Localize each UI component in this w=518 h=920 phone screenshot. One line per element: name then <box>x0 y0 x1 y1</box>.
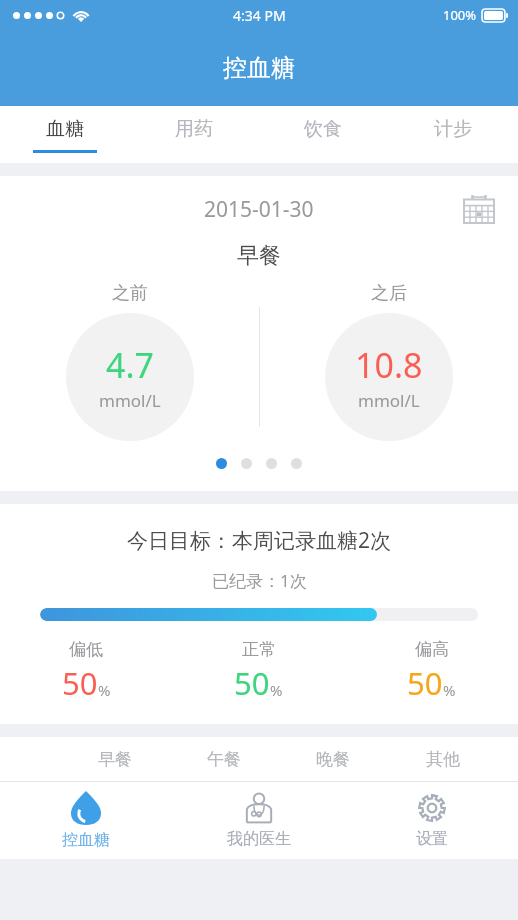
staticText: 午餐 <box>207 749 241 770</box>
staticText: 设置 <box>416 829 448 849</box>
staticText: 早餐 <box>98 749 132 770</box>
staticText: 用药 <box>175 117 213 141</box>
staticText: 我的医生 <box>227 829 291 849</box>
staticText: 控血糖 <box>62 830 110 850</box>
staticText: 血糖 <box>46 117 84 141</box>
button[interactable]: 午餐 <box>169 737 278 781</box>
staticText: 今日目标：本周记录血糖2次 <box>127 526 392 555</box>
staticText: 正常 <box>242 639 276 660</box>
button[interactable]: 其他 <box>388 737 498 781</box>
button[interactable]: Calendar <box>462 192 496 226</box>
button[interactable]: 血糖 <box>0 106 129 163</box>
staticText: mmol/L <box>99 389 161 412</box>
staticText: 已纪录：1次 <box>212 569 307 592</box>
staticText: 饮食 <box>304 117 342 141</box>
staticText: 4:34 PM <box>233 6 286 25</box>
staticText: 偏高 <box>415 639 449 660</box>
button[interactable]: 早餐 <box>60 737 169 781</box>
button[interactable]: 偏低 <box>0 639 172 704</box>
button[interactable]: 我的医生 <box>172 781 345 859</box>
staticText: 晚餐 <box>316 749 350 770</box>
button[interactable]: 晚餐 <box>278 737 388 781</box>
staticText: 计步 <box>434 117 472 141</box>
staticText: 偏低 <box>69 639 103 660</box>
staticText: 其他 <box>426 749 460 770</box>
button[interactable]: 之前 <box>0 282 259 452</box>
button[interactable]: 偏高 <box>345 639 518 704</box>
button[interactable]: 计步 <box>388 106 518 163</box>
staticText: 100% <box>443 6 477 24</box>
button[interactable]: 设置 <box>345 781 518 859</box>
staticText: 之后 <box>371 282 407 305</box>
staticText: % <box>270 680 283 700</box>
staticText: 控血糖 <box>223 53 295 83</box>
staticText: 4.7 <box>106 342 155 388</box>
button[interactable]: 之后 <box>259 282 518 452</box>
staticText: % <box>443 680 456 700</box>
staticText: 50 <box>234 662 270 704</box>
button[interactable]: 用药 <box>129 106 258 163</box>
staticText: 50 <box>407 662 443 704</box>
staticText: % <box>98 680 111 700</box>
staticText: 50 <box>62 662 98 704</box>
staticText: 之前 <box>112 282 148 305</box>
staticText: 早餐 <box>237 242 281 270</box>
staticText: 10.8 <box>355 342 423 388</box>
button[interactable]: 控血糖 <box>0 781 172 859</box>
button[interactable]: 饮食 <box>258 106 388 163</box>
staticText: 2015-01-30 <box>204 195 314 224</box>
staticText: mmol/L <box>358 389 420 412</box>
button[interactable]: 正常 <box>172 639 345 704</box>
